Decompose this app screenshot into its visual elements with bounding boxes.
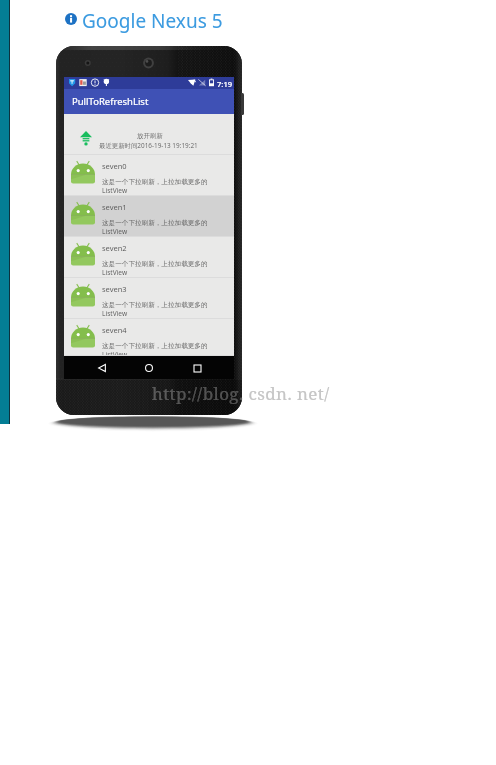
staticText: 这是一个下拉刷新，上拉加载更多的 [102,342,208,350]
button[interactable]: Back [92,358,112,378]
staticText: ListView [102,268,128,277]
staticText: 7:19 [217,79,233,89]
button[interactable]: Home [139,358,159,378]
button[interactable]: Recents [187,358,207,378]
staticText: ListView [102,309,128,318]
staticText: 这是一个下拉刷新，上拉加载更多的 [102,219,208,227]
button[interactable]: seven1 [64,196,234,237]
staticText: Google Nexus 5 [82,8,223,34]
staticText: seven4 [102,325,127,335]
button[interactable]: seven0 [64,155,234,196]
staticText: 最近更新时间2016-19-13 19:19:21 [99,141,198,150]
staticText: seven1 [102,202,127,212]
button[interactable]: seven2 [64,237,234,278]
staticText: 这是一个下拉刷新，上拉加载更多的 [102,301,208,309]
staticText: 这是一个下拉刷新，上拉加载更多的 [102,260,208,268]
button[interactable]: seven4 [64,319,234,356]
staticText: seven0 [102,161,127,171]
staticText: http://blog. csdn. net/ [152,382,242,404]
staticText: http://blog. csdn. net/ [242,382,330,404]
staticText: 这是一个下拉刷新，上拉加载更多的 [102,178,208,186]
staticText: ListView [102,350,128,359]
staticText: seven2 [102,243,127,253]
staticText: 放开刷新 [137,132,163,140]
staticText: seven3 [102,284,127,294]
staticText: PullToRefreshList [72,95,149,108]
button[interactable]: seven3 [64,278,234,319]
staticText: ListView [102,186,128,195]
staticText: ListView [102,227,128,236]
